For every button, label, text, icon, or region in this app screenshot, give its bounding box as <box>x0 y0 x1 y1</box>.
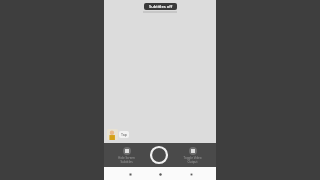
button[interactable]: Toggle video output <box>181 146 204 165</box>
button[interactable]: Tap <box>119 131 129 138</box>
button[interactable]: Back <box>125 169 135 179</box>
button[interactable]: Home <box>155 169 165 179</box>
staticText: Subtitles off <box>149 4 172 9</box>
staticText: Tap <box>121 132 127 137</box>
button[interactable]: Subtitles off <box>144 3 177 10</box>
button[interactable]: Hide screen subtitles <box>116 146 137 165</box>
staticText: Toggle Video Output <box>183 156 202 164</box>
button[interactable]: Shutter <box>149 145 169 165</box>
button[interactable]: Last photo <box>107 129 118 140</box>
button[interactable]: Recents <box>186 169 196 179</box>
staticText: Hide Screen Subtitles <box>118 156 135 164</box>
